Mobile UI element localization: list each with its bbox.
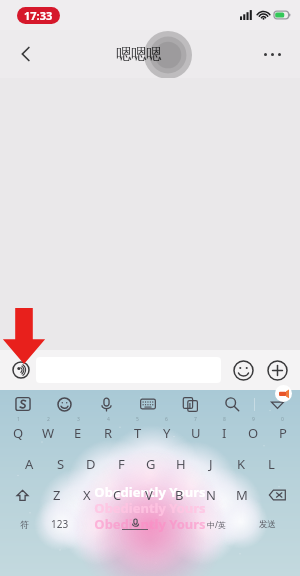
button[interactable]: J [196, 453, 226, 475]
button[interactable]: 6 [152, 422, 181, 444]
staticText: I [222, 424, 227, 442]
staticText: W [42, 424, 55, 442]
button[interactable]: Sogou input [10, 391, 36, 417]
staticText: 0 [281, 416, 284, 423]
button[interactable]: Space [78, 513, 191, 535]
staticText: J [209, 455, 213, 473]
staticText: Q [13, 424, 24, 442]
button[interactable]: Back [6, 34, 46, 74]
button[interactable]: Keyboard [135, 391, 161, 417]
button[interactable]: More options [252, 34, 292, 74]
button[interactable]: 7 [181, 422, 210, 444]
button[interactable]: Z [42, 484, 72, 506]
button[interactable]: K [226, 453, 256, 475]
button[interactable]: 8 [210, 422, 239, 444]
staticText: Obediently Yours [94, 483, 206, 501]
button[interactable]: 0 [268, 422, 297, 444]
staticText: M [236, 486, 248, 504]
staticText: B [175, 486, 184, 504]
staticText: 6 [165, 416, 168, 423]
staticText: 嗯嗯嗯 [116, 45, 161, 64]
staticText: Obediently Yours [94, 499, 206, 517]
button[interactable]: V [133, 484, 164, 506]
staticText: U [191, 424, 201, 442]
button[interactable]: S [45, 453, 76, 475]
button[interactable]: 9 [239, 422, 268, 444]
staticText: E [74, 424, 82, 442]
button[interactable]: Emoji [227, 354, 259, 386]
staticText: G [146, 455, 156, 473]
staticText: 17:33 [24, 8, 53, 23]
staticText: R [104, 424, 113, 442]
staticText: T [134, 424, 142, 442]
staticText: X [83, 486, 91, 504]
button[interactable]: Clipboard [177, 391, 203, 417]
staticText: K [237, 455, 246, 473]
button[interactable]: G [136, 453, 166, 475]
staticText: 7 [194, 416, 197, 423]
staticText: Z [53, 486, 61, 504]
staticText: 3 [77, 416, 80, 423]
button[interactable]: 123 [42, 513, 78, 535]
staticText: A [25, 455, 34, 473]
button[interactable]: Microphone [93, 391, 119, 417]
staticText: 123 [51, 517, 69, 531]
button[interactable]: H [166, 453, 196, 475]
staticText: S [57, 455, 65, 473]
button[interactable]: 3 [63, 422, 93, 444]
button[interactable]: 2 [33, 422, 63, 444]
staticText: 8 [223, 416, 226, 423]
staticText: F [118, 455, 125, 473]
button[interactable]: N [195, 484, 226, 506]
button[interactable]: Voice input [6, 355, 36, 385]
staticText: P [279, 424, 287, 442]
button[interactable]: L [256, 453, 286, 475]
staticText: 9 [252, 416, 255, 423]
button[interactable]: Shift [3, 484, 42, 506]
staticText: 中/英 [207, 519, 226, 530]
button[interactable]: B [164, 484, 195, 506]
button[interactable]: M [226, 484, 257, 506]
staticText: O [248, 424, 259, 442]
staticText: 符 [20, 519, 29, 530]
staticText: Obediently Yours [94, 515, 206, 533]
button[interactable]: D [76, 453, 106, 475]
button[interactable]: C [102, 484, 133, 506]
staticText: N [206, 486, 216, 504]
staticText: 1 [17, 416, 20, 423]
button[interactable]: More [261, 354, 293, 386]
staticText: 发送 [259, 519, 276, 530]
button[interactable]: Notice [275, 385, 292, 402]
button[interactable]: 符 [6, 513, 42, 535]
staticText: V [145, 486, 153, 504]
staticText: H [176, 455, 186, 473]
button[interactable]: Backspace [257, 484, 297, 506]
staticText: L [268, 455, 275, 473]
button[interactable]: 5 [123, 422, 152, 444]
button[interactable]: 中/英 [191, 513, 241, 535]
staticText: D [86, 455, 96, 473]
button[interactable]: 4 [93, 422, 123, 444]
other: Annotation arrow [2, 308, 46, 364]
button[interactable]: Search [219, 391, 245, 417]
button[interactable]: Hide keyboard [264, 391, 290, 417]
button[interactable]: A [14, 453, 45, 475]
staticText: 5 [136, 416, 139, 423]
button[interactable]: 1 [3, 422, 33, 444]
staticText: Y [163, 424, 171, 442]
staticText: 2 [47, 416, 50, 423]
button[interactable]: F [106, 453, 136, 475]
button[interactable]: X [72, 484, 102, 506]
staticText: C [113, 486, 122, 504]
button[interactable]: Enter [241, 513, 294, 535]
staticText: 4 [107, 416, 110, 423]
button[interactable]: Emoji [51, 391, 77, 417]
